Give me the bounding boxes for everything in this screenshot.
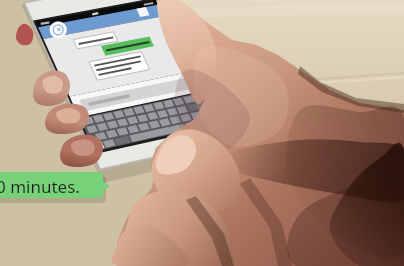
button[interactable]: 0 minutes. [0,0,404,266]
staticText: 0 minutes. [0,175,80,198]
